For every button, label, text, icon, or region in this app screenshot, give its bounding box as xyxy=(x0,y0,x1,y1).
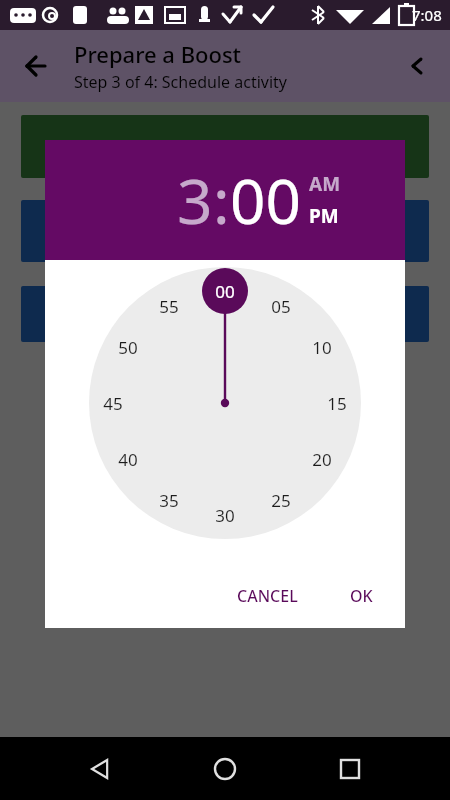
staticText: 15 xyxy=(327,392,347,414)
staticText: 10 xyxy=(312,336,332,358)
button[interactable]: Recent apps xyxy=(326,745,374,793)
staticText: 00 xyxy=(230,158,301,242)
button[interactable]: Back xyxy=(77,745,125,793)
button[interactable]: 05 xyxy=(263,295,299,317)
button[interactable]: Next xyxy=(398,46,438,86)
staticText: PM xyxy=(309,203,339,229)
staticText: CANCEL xyxy=(237,585,298,607)
staticText: 35 xyxy=(159,489,179,511)
button[interactable]: 50 xyxy=(110,336,146,358)
staticText: 30 xyxy=(215,504,235,526)
button[interactable]: 00 xyxy=(230,158,301,242)
staticText: : xyxy=(213,158,230,242)
button[interactable] xyxy=(21,200,429,262)
staticText: 55 xyxy=(159,295,179,317)
staticText: 3 xyxy=(177,158,213,242)
button[interactable]: Back xyxy=(16,46,56,86)
button[interactable]: OK xyxy=(338,575,385,617)
button[interactable]: CANCEL xyxy=(225,575,310,617)
staticText: 50 xyxy=(118,336,138,358)
button[interactable]: 25 xyxy=(263,489,299,511)
button[interactable]: Home xyxy=(201,745,249,793)
staticText: 45 xyxy=(103,392,123,414)
button[interactable]: 55 xyxy=(151,295,187,317)
button[interactable]: 15 xyxy=(319,392,355,414)
staticText: 05 xyxy=(271,295,291,317)
staticText: Prepare a Boost xyxy=(74,39,242,69)
staticText: 25 xyxy=(271,489,291,511)
button[interactable]: 00 xyxy=(207,280,243,302)
button[interactable] xyxy=(21,115,429,178)
button[interactable]: 20 xyxy=(304,448,340,470)
button[interactable]: 40 xyxy=(110,448,146,470)
button[interactable]: PM xyxy=(309,203,339,229)
staticText: 40 xyxy=(118,448,138,470)
staticText: AM xyxy=(309,171,341,197)
button[interactable]: AM xyxy=(309,171,341,197)
button[interactable] xyxy=(21,286,429,342)
button[interactable]: 30 xyxy=(207,504,243,526)
staticText: 00 xyxy=(215,280,235,302)
staticText: Step 3 of 4: Schedule activity xyxy=(74,71,288,93)
staticText: 20 xyxy=(312,448,332,470)
staticText: 7:08 xyxy=(412,5,442,25)
button[interactable]: 3 xyxy=(177,158,213,242)
button[interactable]: 45 xyxy=(95,392,131,414)
staticText: OK xyxy=(350,585,373,607)
button[interactable]: 10 xyxy=(304,336,340,358)
button[interactable]: 35 xyxy=(151,489,187,511)
